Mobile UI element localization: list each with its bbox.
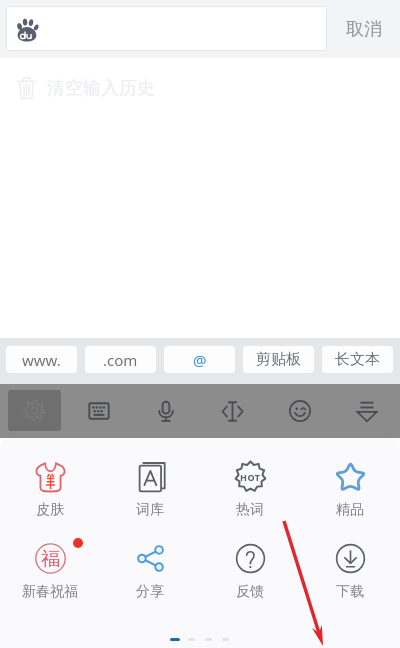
button[interactable]: Emoji bbox=[266, 384, 333, 438]
staticText: .com bbox=[103, 350, 138, 370]
staticText: 剪贴板 bbox=[256, 350, 301, 369]
button[interactable]: 分享 bbox=[100, 542, 200, 601]
staticText: HOT bbox=[240, 471, 261, 483]
staticText: 词库 bbox=[136, 501, 164, 519]
button[interactable]: 皮肤 bbox=[0, 460, 100, 519]
staticText: 皮肤 bbox=[36, 501, 64, 519]
button[interactable]: HOT bbox=[200, 460, 300, 519]
button[interactable]: @ bbox=[164, 346, 235, 373]
button[interactable]: 精品 bbox=[300, 460, 400, 519]
button[interactable]: 清空输入历史 bbox=[0, 58, 400, 112]
staticText: 精品 bbox=[336, 501, 364, 519]
button[interactable]: Collapse keyboard bbox=[333, 384, 400, 438]
button[interactable]: 反馈 bbox=[200, 542, 300, 601]
staticText: 热词 bbox=[236, 501, 264, 519]
button[interactable]: Voice input bbox=[132, 384, 199, 438]
staticText: 分享 bbox=[136, 583, 164, 601]
button[interactable]: .com bbox=[85, 346, 156, 373]
button[interactable]: 剪贴板 bbox=[243, 346, 314, 373]
staticText: 清空输入历史 bbox=[47, 77, 155, 100]
staticText: @ bbox=[193, 350, 207, 370]
button[interactable]: Keyboard bbox=[66, 384, 132, 438]
button[interactable]: www. bbox=[6, 346, 77, 373]
staticText: 下载 bbox=[336, 583, 364, 601]
button[interactable] bbox=[6, 6, 327, 51]
staticText: 新春祝福 bbox=[22, 583, 78, 601]
button[interactable]: 下载 bbox=[300, 542, 400, 601]
staticText: 取消 bbox=[346, 18, 382, 41]
staticText: 长文本 bbox=[335, 350, 380, 369]
button[interactable]: 长文本 bbox=[322, 346, 393, 373]
button[interactable]: 取消 bbox=[327, 0, 400, 58]
staticText: 反馈 bbox=[236, 583, 264, 601]
staticText: www. bbox=[22, 350, 61, 370]
button[interactable]: 福 bbox=[0, 542, 100, 601]
staticText: 福 bbox=[41, 547, 60, 571]
button[interactable]: 词库 bbox=[100, 460, 200, 519]
button[interactable]: Move cursor bbox=[199, 384, 266, 438]
